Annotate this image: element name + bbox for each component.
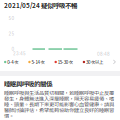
staticText: 23:45 [13, 51, 26, 56]
staticText: 2021/05/24 疑似呼吸不暢 [4, 0, 77, 10]
staticText: 睡眠與呼吸的關係 [4, 79, 52, 88]
staticText: 50 [8, 16, 14, 21]
staticText: 0-4 次 [7, 59, 18, 65]
staticText: 08:48 [97, 52, 110, 57]
button[interactable]: 0-4 次 [4, 58, 116, 66]
staticText: 25 [8, 31, 14, 37]
staticText: 0 [11, 47, 14, 52]
staticText: 睡眠呼吸與生活品質切相關，若睡眠呼吸中止反覆發生，身體無法進入深層睡眠，隔天容易… [4, 89, 114, 119]
staticText: 30 次以上 [86, 59, 103, 65]
staticText: 5-14 次 [31, 59, 44, 65]
staticText: 15-30 次 [58, 59, 73, 65]
